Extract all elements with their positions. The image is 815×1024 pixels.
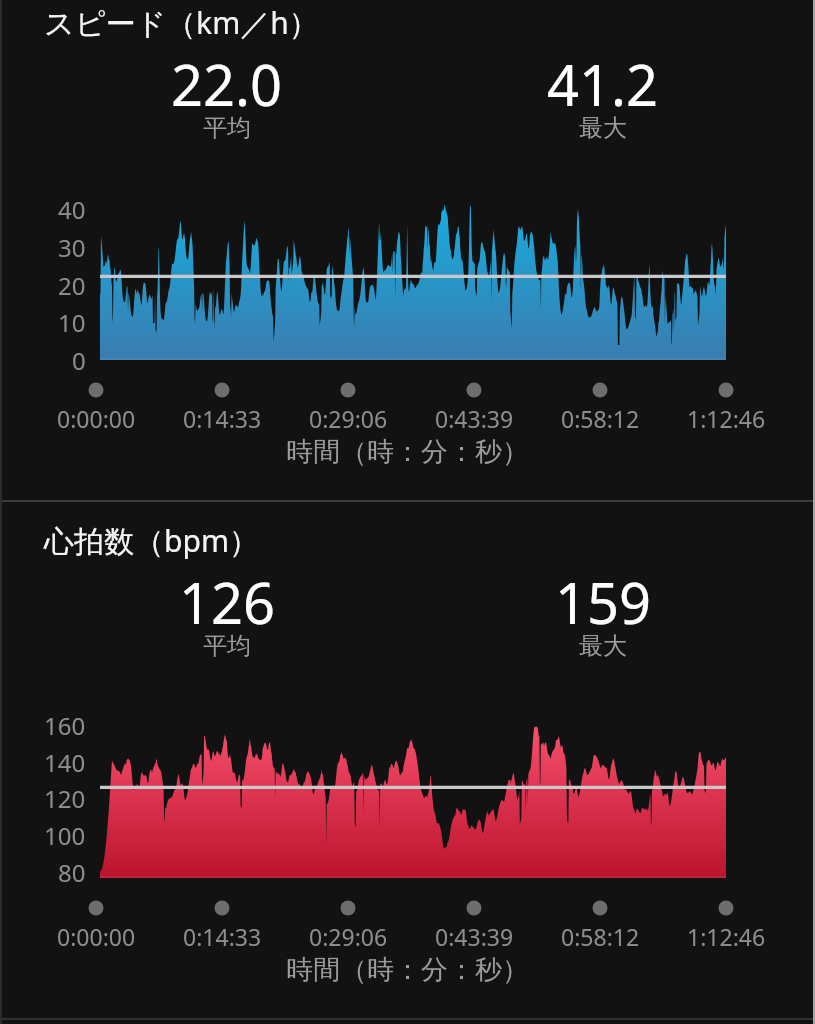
staticText: 平均 bbox=[203, 631, 251, 661]
staticText: 時間（時：分：秒） bbox=[286, 435, 529, 469]
staticText: 0:43:39 bbox=[435, 921, 514, 952]
staticText: 0:58:12 bbox=[561, 403, 640, 434]
staticText: 20 bbox=[58, 269, 86, 302]
staticText: 0:43:39 bbox=[435, 403, 514, 434]
staticText: 0:00:00 bbox=[57, 403, 136, 434]
staticText: スピード（km／h） bbox=[44, 2, 319, 43]
staticText: 1:12:46 bbox=[687, 403, 766, 434]
staticText: 0:14:33 bbox=[183, 403, 262, 434]
staticText: 最大 bbox=[579, 631, 627, 661]
staticText: 160 bbox=[44, 709, 86, 742]
button[interactable]: スピード（km／h） bbox=[0, 0, 815, 482]
staticText: 最大 bbox=[579, 113, 627, 143]
staticText: 140 bbox=[44, 746, 86, 779]
staticText: 0:00:00 bbox=[57, 921, 136, 952]
staticText: 時間（時：分：秒） bbox=[286, 953, 529, 987]
staticText: 心拍数（bpm） bbox=[44, 520, 259, 561]
staticText: 100 bbox=[44, 819, 86, 852]
staticText: 0:29:06 bbox=[309, 403, 388, 434]
staticText: 0:29:06 bbox=[309, 921, 388, 952]
staticText: 平均 bbox=[203, 113, 251, 143]
staticText: 30 bbox=[58, 231, 86, 264]
button[interactable]: 心拍数（bpm） bbox=[0, 502, 815, 1000]
staticText: 40 bbox=[58, 193, 86, 226]
staticText: 0:58:12 bbox=[561, 921, 640, 952]
staticText: 120 bbox=[44, 782, 86, 815]
staticText: 126 bbox=[179, 564, 276, 640]
staticText: 0 bbox=[72, 344, 86, 377]
staticText: 1:12:46 bbox=[687, 921, 766, 952]
staticText: 10 bbox=[58, 306, 86, 339]
staticText: 41.2 bbox=[547, 46, 659, 122]
staticText: 22.0 bbox=[171, 46, 283, 122]
staticText: 0:14:33 bbox=[183, 921, 262, 952]
staticText: 159 bbox=[555, 564, 652, 640]
staticText: 80 bbox=[58, 856, 86, 889]
